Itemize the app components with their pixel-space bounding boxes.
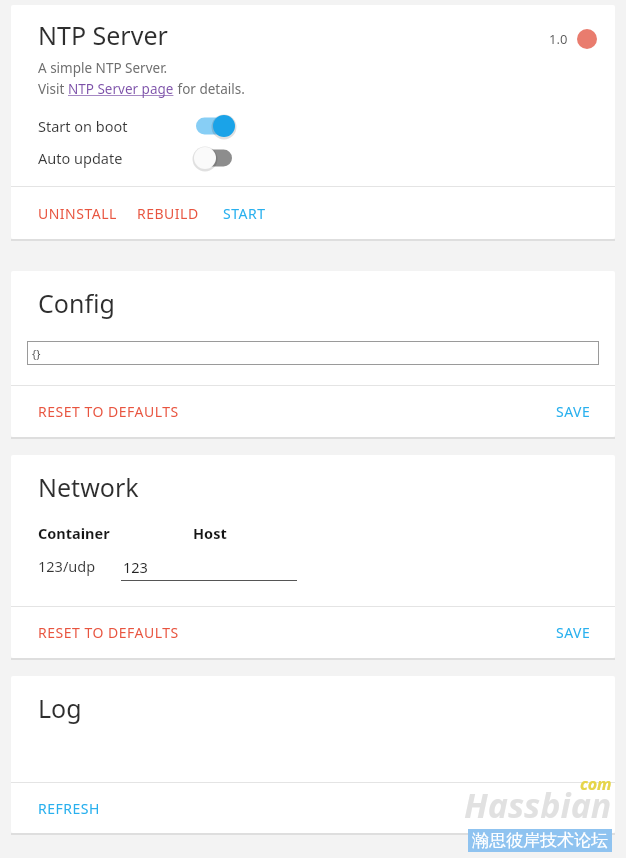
staticText: SAVE — [556, 402, 591, 421]
button[interactable]: Start on boot — [38, 112, 268, 140]
staticText: A simple NTP Server. — [38, 59, 168, 77]
staticText: REFRESH — [38, 799, 100, 818]
staticText: Visit — [38, 80, 68, 98]
staticText: 123 — [123, 557, 148, 577]
other: Disabled — [194, 144, 240, 172]
staticText: Log — [38, 691, 82, 725]
button[interactable]: SAVE — [556, 612, 591, 653]
staticText: Config — [38, 286, 115, 320]
staticText: for details. — [174, 80, 245, 98]
other: Enabled — [194, 112, 240, 140]
staticText: Host — [193, 523, 227, 543]
staticText: 1.0 — [549, 30, 568, 48]
staticText: {} — [32, 346, 41, 361]
button[interactable]: UNINSTALL — [38, 193, 117, 234]
staticText: NTP Server — [38, 18, 168, 52]
staticText: REBUILD — [137, 204, 199, 223]
staticText: UNINSTALL — [38, 204, 117, 223]
staticText: 瀚思彼岸技术论坛 — [472, 830, 608, 851]
staticText: NTP Server page — [68, 80, 174, 98]
button[interactable]: RESET TO DEFAULTS — [38, 612, 179, 653]
button[interactable]: Auto update — [38, 144, 268, 172]
button[interactable]: START — [223, 193, 266, 234]
staticText: RESET TO DEFAULTS — [38, 623, 179, 642]
staticText: RESET TO DEFAULTS — [38, 402, 179, 421]
button[interactable]: NTP Server page — [68, 80, 174, 98]
staticText: SAVE — [556, 623, 591, 642]
staticText: Network — [38, 470, 139, 504]
staticText: Hassbian — [464, 782, 612, 828]
button[interactable]: SAVE — [556, 391, 591, 432]
staticText: Container — [38, 523, 193, 543]
button[interactable]: 123 — [121, 557, 297, 581]
button[interactable]: REFRESH — [38, 788, 100, 829]
staticText: Auto update — [38, 148, 194, 168]
other: Status indicator — [577, 29, 597, 49]
button[interactable]: RESET TO DEFAULTS — [38, 391, 179, 432]
staticText: com — [580, 773, 612, 795]
button[interactable]: {} — [27, 341, 599, 365]
staticText: Start on boot — [38, 116, 194, 136]
staticText: 123/udp — [38, 556, 96, 576]
staticText: START — [223, 204, 266, 223]
button[interactable]: REBUILD — [137, 193, 199, 234]
